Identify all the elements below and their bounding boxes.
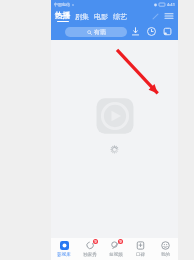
staticText: 独家秀 [83,252,97,258]
staticText: 9 [119,239,122,244]
button[interactable]: 剧集 [75,12,89,21]
staticText: 中国电信 [54,2,70,7]
button[interactable]: 我的 [153,238,178,260]
button[interactable]: Menu [163,10,175,22]
staticText: 我的 [161,252,170,258]
staticText: 短视频 [109,252,123,258]
button[interactable]: 9 [103,238,128,260]
staticText: 4:41 [167,2,175,7]
button[interactable]: 热播 [55,11,70,22]
button[interactable]: 影视库 [51,238,77,260]
button[interactable]: Cast [161,25,174,38]
staticText: 影视库 [57,252,71,258]
staticText: 9 [94,239,97,244]
button[interactable]: 有翡 [65,27,127,37]
button[interactable]: 综艺 [113,12,127,21]
button[interactable]: History [145,25,158,38]
button[interactable]: 9 [77,238,103,260]
staticText: 有翡 [94,28,106,36]
staticText: 剧集 [75,12,89,21]
staticText: 综艺 [113,12,127,21]
button[interactable]: Download [129,25,142,38]
staticText: 热播 [55,11,70,20]
staticText: 电影 [94,12,108,21]
button[interactable]: Edit [150,11,161,22]
button[interactable]: 口碑 [128,238,153,260]
button[interactable]: 电影 [94,12,108,21]
staticText: 口碑 [136,252,145,258]
